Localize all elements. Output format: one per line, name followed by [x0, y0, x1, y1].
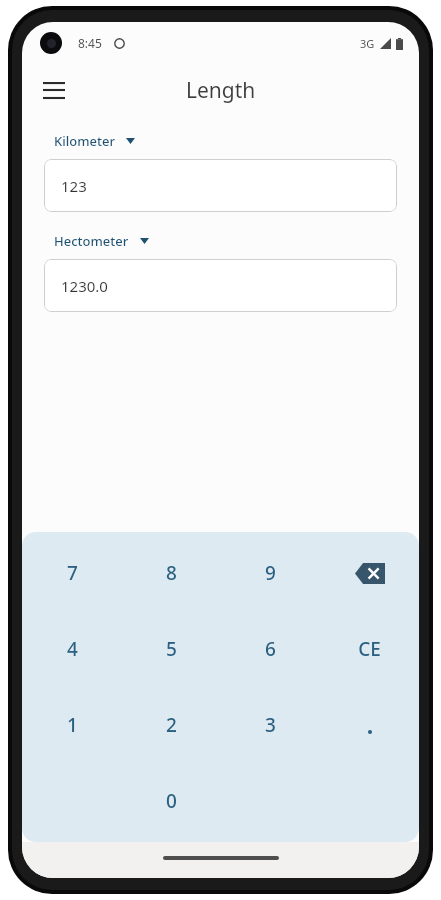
button[interactable]: 3	[221, 690, 320, 760]
staticText: 8:45	[78, 35, 102, 51]
button[interactable]: 8	[122, 538, 221, 608]
button[interactable]: CE	[320, 614, 419, 684]
staticText: 1	[67, 712, 78, 738]
button[interactable]: 1230.0	[44, 259, 397, 312]
button[interactable]: 9	[221, 538, 320, 608]
staticText: 7	[67, 560, 78, 586]
staticText: 9	[265, 560, 276, 586]
button[interactable]: 1	[22, 690, 122, 760]
button[interactable]: Open navigation menu	[32, 68, 76, 112]
button[interactable]: Kilometer	[50, 128, 139, 154]
staticText: 6	[265, 636, 276, 662]
staticText: 123	[61, 176, 87, 196]
button[interactable]: Backspace	[320, 538, 419, 608]
button[interactable]	[320, 690, 419, 760]
button[interactable]: 6	[221, 614, 320, 684]
button[interactable]: 123	[44, 159, 397, 212]
button[interactable]: 5	[122, 614, 221, 684]
staticText: 0	[166, 788, 177, 814]
staticText: 8	[166, 560, 177, 586]
staticText: 3	[265, 712, 276, 738]
staticText: 5	[166, 636, 177, 662]
button[interactable]: Hectometer	[50, 228, 153, 254]
staticText: 1230.0	[61, 276, 108, 296]
button[interactable]: 7	[22, 538, 122, 608]
staticText: Length	[186, 76, 256, 105]
button[interactable]: 2	[122, 690, 221, 760]
staticText: 3G	[360, 36, 375, 51]
staticText: CE	[358, 636, 381, 662]
staticText: 2	[166, 712, 177, 738]
staticText: Kilometer	[54, 132, 115, 150]
staticText: 4	[67, 636, 78, 662]
button[interactable]: 0	[122, 766, 221, 836]
button[interactable]: 4	[22, 614, 122, 684]
staticText: Hectometer	[54, 232, 129, 250]
